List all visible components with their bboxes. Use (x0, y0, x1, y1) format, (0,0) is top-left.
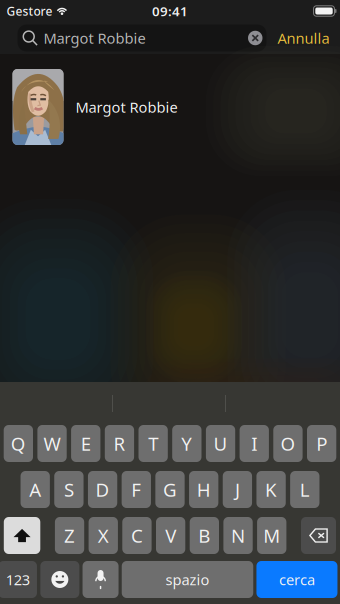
staticText: Z (64, 523, 75, 548)
button[interactable]: X (89, 517, 118, 554)
button[interactable]: Annulla (277, 28, 329, 48)
staticText: B (198, 523, 210, 548)
staticText: Q (11, 431, 26, 456)
button[interactable]: Y (172, 425, 201, 462)
button[interactable]: E (71, 425, 100, 462)
staticText: Margot Robbie (43, 28, 145, 48)
staticText: Gestore (6, 3, 52, 19)
staticText: R (113, 431, 125, 456)
button[interactable]: K (256, 471, 286, 508)
button[interactable]: Q (4, 425, 33, 462)
button[interactable]: W (37, 425, 67, 462)
button[interactable]: V (156, 517, 185, 554)
button[interactable]: A (20, 471, 50, 508)
staticText: 123 (6, 570, 30, 589)
button[interactable]: spazio (122, 561, 253, 598)
staticText: U (214, 431, 228, 456)
staticText: I (251, 431, 257, 456)
button[interactable]: 123 (0, 561, 37, 598)
staticText: H (197, 477, 211, 502)
staticText: F (131, 477, 141, 502)
staticText: M (263, 523, 280, 548)
staticText: J (235, 477, 240, 502)
staticText: X (98, 523, 109, 548)
button[interactable]: N (223, 517, 253, 554)
button[interactable]: C (122, 517, 152, 554)
staticText: E (81, 431, 91, 456)
button[interactable]: Delete (301, 517, 336, 554)
staticText: V (165, 523, 176, 548)
button[interactable]: Margot Robbie (17, 24, 266, 51)
button[interactable]: P (307, 425, 336, 462)
staticText: K (265, 477, 277, 502)
staticText: W (43, 431, 60, 456)
staticText: L (300, 477, 310, 502)
button[interactable]: B (190, 517, 219, 554)
button[interactable]: L (290, 471, 319, 508)
button[interactable]: Dictation (83, 561, 119, 598)
staticText: P (316, 431, 327, 456)
button[interactable]: G (155, 471, 185, 508)
staticText: O (280, 431, 295, 456)
staticText: Annulla (277, 28, 329, 48)
staticText: S (64, 477, 74, 502)
button[interactable]: S (54, 471, 83, 508)
staticText: N (231, 523, 245, 548)
button[interactable]: R (105, 425, 134, 462)
staticText: Y (181, 431, 192, 456)
staticText: D (96, 477, 110, 502)
button[interactable]: J (223, 471, 252, 508)
button[interactable]: Emoji (40, 561, 79, 598)
staticText: Margot Robbie (75, 97, 177, 117)
staticText: G (163, 477, 177, 502)
button[interactable]: U (206, 425, 235, 462)
button[interactable]: O (273, 425, 303, 462)
button[interactable]: Z (55, 517, 84, 554)
button[interactable]: M (257, 517, 286, 554)
button[interactable]: Margot Robbie (12, 69, 332, 145)
button[interactable]: D (88, 471, 117, 508)
staticText: C (131, 523, 143, 548)
button[interactable]: I (240, 425, 269, 462)
button[interactable]: cerca (256, 561, 337, 598)
button[interactable]: T (138, 425, 168, 462)
staticText: T (148, 431, 158, 456)
staticText: A (29, 477, 41, 502)
staticText: spazio (165, 570, 209, 589)
staticText: 09:41 (152, 2, 188, 20)
button[interactable]: Shift (4, 517, 40, 554)
staticText: cerca (279, 570, 315, 589)
button[interactable]: F (122, 471, 151, 508)
button[interactable]: H (189, 471, 218, 508)
